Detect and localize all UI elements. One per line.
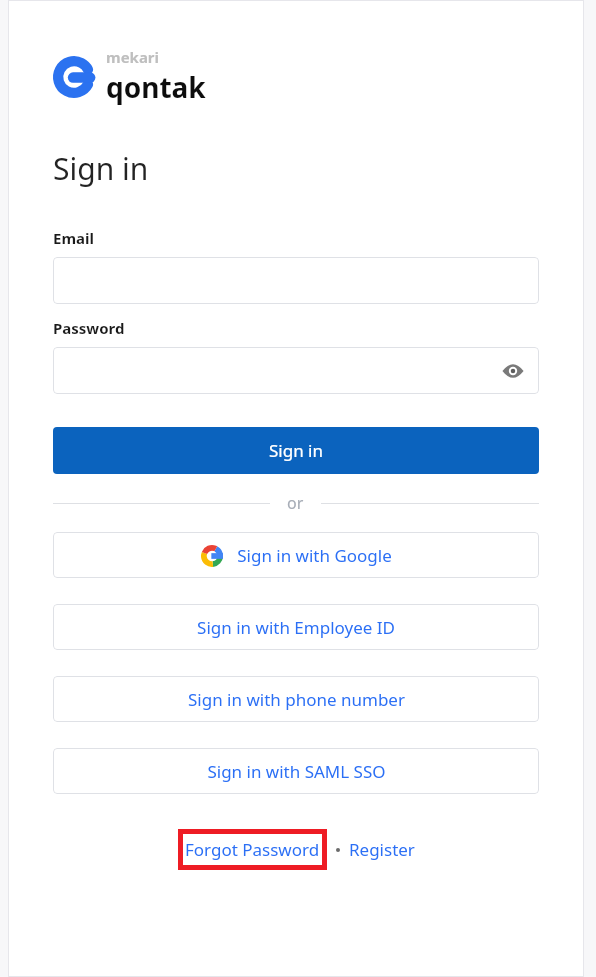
staticText: Sign in (53, 148, 149, 189)
button[interactable]: Show password (53, 347, 539, 394)
button[interactable] (53, 257, 539, 304)
staticText: Forgot Password (185, 838, 320, 861)
staticText: Sign in (269, 439, 323, 462)
staticText: Sign in with Employee ID (197, 616, 395, 639)
button[interactable]: Sign in (53, 427, 539, 474)
staticText: Register (349, 838, 415, 861)
button[interactable]: Sign in with Google (53, 532, 539, 578)
button[interactable]: Sign in with Employee ID (53, 604, 539, 650)
button[interactable]: Forgot Password (185, 838, 320, 861)
button[interactable]: Sign in with SAML SSO (53, 748, 539, 794)
staticText: Sign in with Google (237, 544, 392, 567)
staticText: Password (53, 318, 125, 338)
staticText: qontak (106, 68, 206, 106)
staticText: Sign in with SAML SSO (207, 760, 386, 783)
staticText: Email (53, 228, 94, 248)
button[interactable]: Sign in with phone number (53, 676, 539, 722)
staticText: Sign in with phone number (188, 688, 405, 711)
button[interactable]: Register (349, 838, 415, 861)
staticText: or (287, 492, 304, 514)
staticText: mekari (106, 47, 160, 67)
button[interactable]: Show password (499, 357, 527, 385)
